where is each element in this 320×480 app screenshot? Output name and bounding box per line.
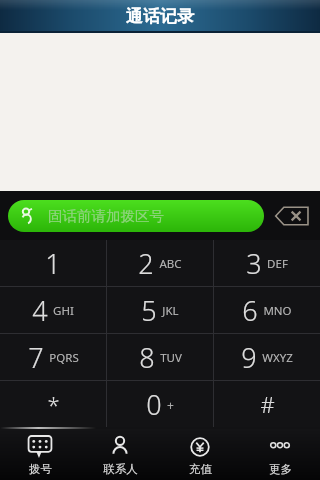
staticText: PQRS [49, 350, 79, 366]
button[interactable]: 0 [107, 381, 213, 427]
staticText: 5 [141, 292, 157, 329]
button[interactable]: 充值 [160, 429, 240, 480]
staticText: 1 [45, 245, 61, 282]
staticText: 充值 [189, 462, 212, 476]
button[interactable]: 2 [107, 240, 213, 286]
staticText: GHI [53, 303, 74, 319]
button[interactable]: 5 [107, 287, 213, 333]
staticText: 8 [139, 339, 155, 376]
button[interactable]: 固话前请加拨区号 [8, 200, 264, 232]
button[interactable]: 6 [214, 287, 320, 333]
button[interactable]: 联系人 [80, 429, 160, 480]
staticText: 联系人 [103, 462, 138, 476]
staticText: 9 [241, 339, 257, 376]
button[interactable]: Backspace [272, 200, 312, 232]
staticText: * [47, 389, 60, 419]
button[interactable]: 1 [0, 240, 106, 286]
staticText: 6 [242, 292, 258, 329]
staticText: JKL [162, 303, 179, 319]
staticText: MNO [263, 303, 292, 319]
button[interactable]: 8 [107, 334, 213, 380]
button[interactable]: 拨号 [0, 429, 80, 480]
staticText: TUV [160, 350, 182, 366]
staticText: 3 [246, 245, 262, 282]
staticText: DEF [267, 256, 288, 272]
button[interactable]: 更多 [240, 429, 320, 480]
staticText: 固话前请加拨区号 [48, 207, 164, 225]
button[interactable]: # [214, 381, 320, 427]
staticText: 通话记录 [126, 6, 194, 27]
button[interactable]: * [0, 381, 106, 427]
staticText: 拨号 [29, 462, 52, 476]
button[interactable]: 4 [0, 287, 106, 333]
staticText: 2 [138, 245, 154, 282]
staticText: 更多 [269, 462, 292, 476]
staticText: 4 [32, 292, 48, 329]
staticText: 0 [146, 386, 162, 423]
staticText: # [260, 389, 275, 419]
button[interactable]: 3 [214, 240, 320, 286]
button[interactable]: 9 [214, 334, 320, 380]
button[interactable]: 7 [0, 334, 106, 380]
staticText: ABC [159, 256, 182, 272]
staticText: 7 [28, 339, 44, 376]
staticText: WXYZ [262, 350, 293, 366]
staticText: + [167, 397, 174, 413]
